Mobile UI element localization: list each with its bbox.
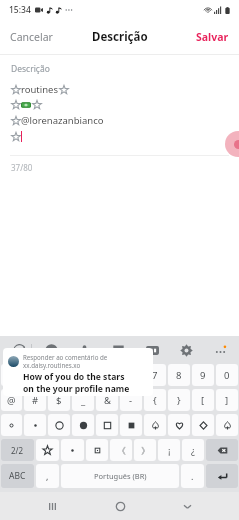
staticText: 5	[104, 369, 110, 382]
staticText: 2/2	[11, 445, 24, 456]
staticText: 15:34	[9, 4, 31, 16]
staticText: #	[32, 394, 39, 407]
staticText: Português (BR)	[94, 471, 147, 481]
staticText: @lorenazanbianco	[21, 114, 104, 127]
staticText: 9	[200, 369, 206, 382]
staticText: Responder ao comentário de	[23, 353, 108, 361]
staticText: 4	[80, 369, 86, 382]
button[interactable]: Tecla	[192, 414, 214, 436]
button[interactable]: Salvar	[186, 23, 239, 51]
staticText: ,	[46, 470, 49, 482]
button[interactable]: Tecla	[48, 414, 70, 436]
button[interactable]: Assistente	[225, 131, 239, 157]
staticText: 7	[152, 369, 158, 382]
staticText: 3	[56, 369, 62, 382]
button[interactable]: .	[181, 464, 204, 488]
button[interactable]: ]	[216, 389, 238, 411]
button[interactable]: ¿	[182, 439, 204, 461]
button[interactable]: 2	[24, 364, 46, 386]
button[interactable]: Início	[105, 492, 135, 520]
staticText: }	[177, 394, 181, 407]
button[interactable]: 4	[72, 364, 94, 386]
staticText: 》	[141, 445, 150, 456]
button[interactable]: Tecla	[61, 439, 84, 461]
button[interactable]: Tecla	[206, 439, 238, 461]
staticText: [	[201, 394, 205, 407]
button[interactable]: #	[24, 389, 46, 411]
button[interactable]: _	[72, 389, 94, 411]
button[interactable]: 0	[216, 364, 238, 386]
button[interactable]: Mais	[211, 341, 229, 359]
button[interactable]: 《	[110, 439, 132, 461]
button[interactable]: Tecla	[86, 439, 108, 461]
staticText: 《	[117, 445, 126, 456]
button[interactable]: Tecla	[36, 439, 59, 461]
staticText: xx.daisy.routines.xo	[23, 361, 81, 369]
staticText: ¿	[191, 444, 195, 456]
staticText: 0	[224, 369, 230, 382]
button[interactable]: 6	[120, 364, 142, 386]
button[interactable]: 3	[48, 364, 70, 386]
button[interactable]: 5	[96, 364, 118, 386]
button[interactable]: 2/2	[1, 439, 34, 461]
button[interactable]: Emoji	[42, 341, 60, 359]
staticText: Descrição	[92, 29, 148, 45]
button[interactable]: Microfone	[75, 341, 93, 359]
staticText: ABC	[9, 470, 26, 482]
staticText: ¡	[168, 444, 171, 456]
button[interactable]: [	[192, 389, 214, 411]
button[interactable]: 8	[168, 364, 190, 386]
button[interactable]: @	[1, 389, 22, 411]
staticText: How of you do the stars	[23, 371, 125, 383]
button[interactable]: GIF	[143, 341, 161, 359]
button[interactable]: -	[120, 389, 142, 411]
staticText: 37/80	[11, 162, 33, 173]
staticText: 2	[32, 369, 38, 382]
button[interactable]: 9	[192, 364, 214, 386]
button[interactable]: Tecla	[72, 414, 94, 436]
button[interactable]: Tecla	[216, 414, 238, 436]
staticText: ]	[225, 394, 229, 407]
button[interactable]: Recentes	[37, 492, 67, 520]
staticText: on the your profile name	[23, 383, 130, 395]
button[interactable]: &	[96, 389, 118, 411]
button[interactable]: 》	[134, 439, 156, 461]
button[interactable]: Traduzir	[10, 341, 28, 359]
staticText: -	[129, 394, 133, 407]
button[interactable]: ABC	[1, 464, 34, 488]
button[interactable]: Fechar teclado	[172, 492, 202, 520]
button[interactable]: Responder ao comentário de	[3, 348, 153, 396]
staticText: @	[7, 394, 16, 407]
button[interactable]: }	[168, 389, 190, 411]
button[interactable]: Configurações	[177, 341, 195, 359]
staticText: Descrição	[11, 63, 50, 75]
button[interactable]: Tecla	[24, 414, 46, 436]
button[interactable]: Tecla	[1, 414, 22, 436]
button[interactable]: ,	[36, 464, 59, 488]
button[interactable]: Português (BR)	[61, 464, 179, 488]
button[interactable]: Tecla	[96, 414, 118, 436]
staticText: Cancelar	[10, 30, 53, 44]
staticText: {	[153, 394, 157, 407]
staticText: &	[104, 394, 111, 407]
button[interactable]: {	[144, 389, 166, 411]
staticText: .	[191, 470, 194, 482]
button[interactable]: Tecla	[120, 414, 142, 436]
button[interactable]: Cancelar	[0, 23, 63, 51]
staticText: _	[81, 394, 86, 407]
button[interactable]: Tecla	[206, 464, 238, 488]
staticText: 8	[176, 369, 182, 382]
button[interactable]: $	[48, 389, 70, 411]
button[interactable]: 1	[1, 364, 22, 386]
button[interactable]: ¡	[158, 439, 180, 461]
staticText: routines	[21, 83, 59, 96]
staticText: $	[56, 394, 62, 407]
button[interactable]: 7	[144, 364, 166, 386]
button[interactable]: Figurinhas	[109, 341, 127, 359]
staticText: Salvar	[196, 30, 229, 44]
button[interactable]: Tecla	[144, 414, 166, 436]
button[interactable]: Tecla	[168, 414, 190, 436]
